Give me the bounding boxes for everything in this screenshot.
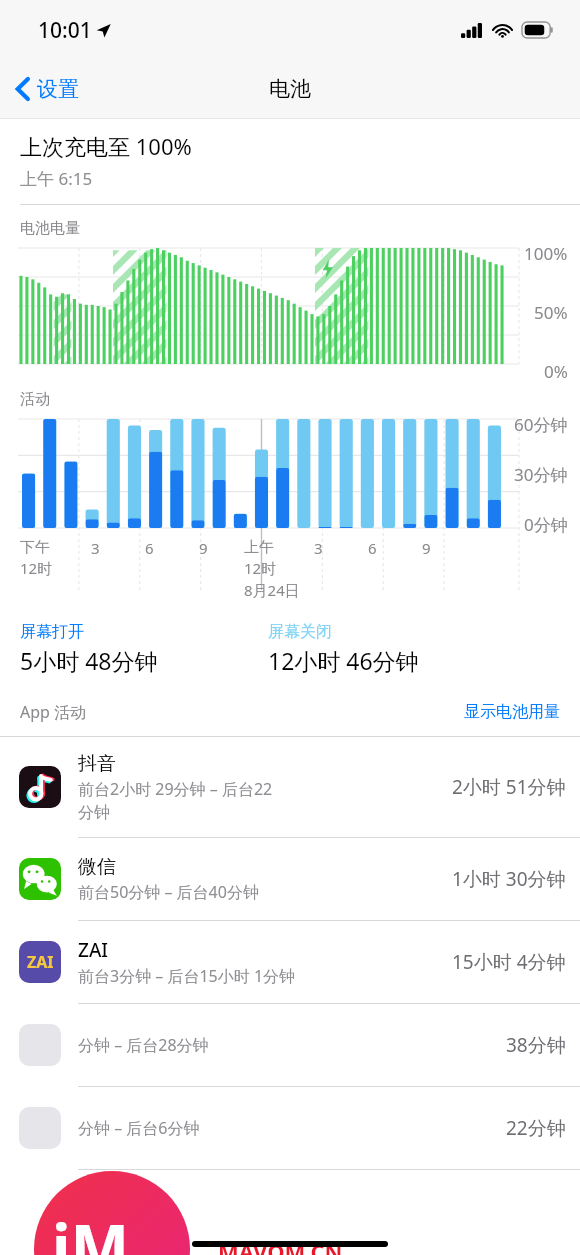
staticText: 10:01 — [38, 16, 92, 45]
button[interactable]: 分钟 – 后台28分钟 — [0, 1004, 580, 1087]
staticText: 屏幕关闭 — [268, 622, 332, 642]
staticText: 屏幕打开 — [20, 622, 84, 642]
staticText: 设置 — [37, 76, 79, 102]
staticText: ZAI — [27, 951, 54, 973]
staticText: 15小时 4分钟 — [452, 949, 566, 975]
staticText: 3 — [91, 538, 100, 558]
button[interactable]: 设置 — [0, 70, 91, 108]
staticText: 前台2小时 29分钟 – 后台22 分钟 — [78, 778, 273, 823]
staticText: 0% — [544, 360, 568, 382]
staticText: 下午 12时 — [20, 538, 53, 579]
staticText: 上午 6:15 — [20, 167, 93, 190]
staticText: ZAI — [78, 937, 109, 963]
staticText: 2小时 51分钟 — [452, 774, 566, 800]
staticText: 分钟 – 后台28分钟 — [78, 1034, 209, 1056]
staticText: 活动 — [20, 390, 50, 409]
staticText: 电池电量 — [20, 219, 80, 238]
staticText: 9 — [422, 538, 431, 558]
staticText: 22分钟 — [506, 1115, 566, 1141]
staticText: 12小时 46分钟 — [268, 645, 419, 676]
staticText: 100% — [524, 242, 568, 265]
staticText: 5小时 48分钟 — [20, 645, 158, 676]
staticText: 38分钟 — [506, 1032, 566, 1058]
button[interactable]: 分钟 – 后台6分钟 — [0, 1087, 580, 1170]
staticText: 6 — [368, 538, 377, 558]
staticText: 前台3分钟 – 后台15小时 1分钟 — [78, 965, 296, 987]
staticText: MAVOM.CN — [218, 1236, 343, 1255]
staticText: iM — [52, 1204, 130, 1255]
staticText: 上次充电至 100% — [20, 131, 192, 161]
staticText: 60分钟 — [514, 413, 568, 436]
staticText: 显示电池用量 — [464, 702, 560, 722]
button[interactable]: 抖音 — [0, 737, 580, 838]
button[interactable]: 显示电池用量 — [460, 698, 564, 726]
staticText: 50% — [534, 301, 568, 324]
button[interactable]: 微信 — [0, 838, 580, 921]
staticText: App 活动 — [20, 701, 87, 723]
button[interactable]: ZAI — [0, 921, 580, 1004]
staticText: 分钟 – 后台6分钟 — [78, 1117, 200, 1139]
staticText: 30分钟 — [514, 463, 568, 486]
staticText: 9 — [199, 538, 208, 558]
staticText: 抖音 — [78, 752, 116, 776]
staticText: 1小时 30分钟 — [452, 866, 566, 892]
staticText: 微信 — [78, 855, 116, 879]
staticText: 上午 12时 8月24日 — [244, 538, 300, 601]
staticText: 6 — [145, 538, 154, 558]
staticText: 0分钟 — [524, 513, 568, 536]
staticText: 3 — [314, 538, 323, 558]
staticText: 电池 — [269, 76, 311, 102]
staticText: 前台50分钟 – 后台40分钟 — [78, 881, 259, 903]
